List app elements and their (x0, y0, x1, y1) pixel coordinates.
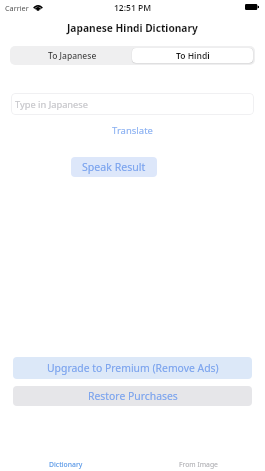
staticText: Restore Purchases (88, 389, 178, 403)
button[interactable]: From Image (132, 460, 265, 471)
button[interactable]: Dictionary (0, 460, 132, 471)
button[interactable]: Type in Japanese (11, 93, 254, 115)
button[interactable]: Restore Purchases (13, 386, 252, 406)
button[interactable]: Upgrade to Premium (Remove Ads) (13, 357, 252, 379)
button[interactable]: Translate (112, 124, 153, 136)
staticText: From Image (179, 460, 218, 469)
button[interactable]: Speak Result (71, 157, 157, 177)
staticText: Upgrade to Premium (Remove Ads) (47, 361, 219, 375)
button[interactable]: To Hindi (132, 48, 253, 63)
staticText: To Hindi (176, 50, 210, 62)
staticText: Speak Result (82, 160, 146, 174)
staticText: 12:51 PM (114, 2, 152, 14)
staticText: To Japanese (48, 50, 97, 62)
staticText: Type in Japanese (15, 98, 89, 111)
staticText: Carrier (5, 3, 29, 13)
button[interactable]: To Japanese (12, 48, 132, 63)
staticText: Japanese Hindi Dictionary (67, 21, 198, 35)
staticText: Dictionary (49, 460, 83, 469)
